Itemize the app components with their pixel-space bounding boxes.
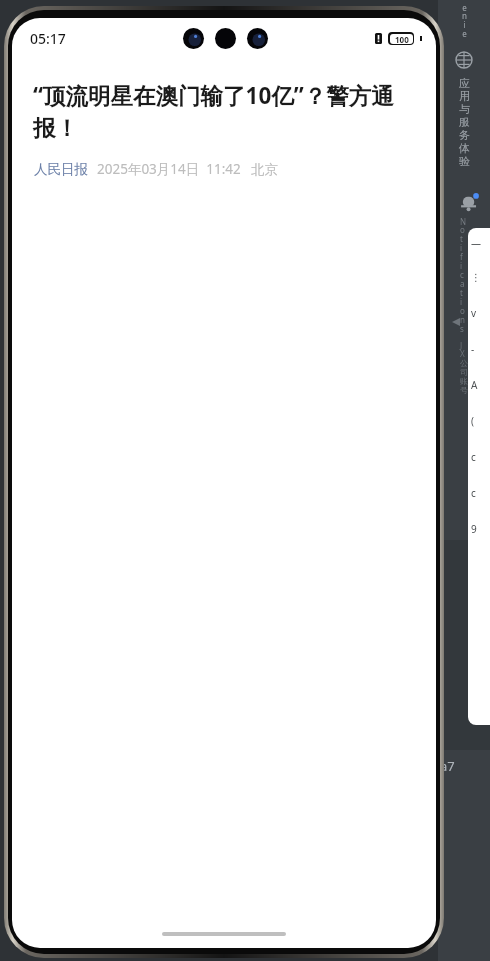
staticText: ( <box>471 414 474 428</box>
staticText: ⋮ <box>471 272 481 284</box>
staticText: “顶流明星在澳门输了10亿”？警方通报！ <box>33 80 415 143</box>
staticText: - <box>471 342 475 356</box>
staticText: a7 <box>440 757 455 775</box>
staticText: N o t i f i c a t i o n s <box>460 216 467 334</box>
button[interactable]: “顶流明星在澳门输了10亿”？警方通报！ <box>33 80 415 143</box>
staticText: — <box>471 236 481 250</box>
staticText: J X 公 司 账 号 <box>460 340 468 395</box>
staticText: 100 <box>395 34 409 44</box>
staticText: A <box>471 378 478 392</box>
staticText: c <box>471 450 476 464</box>
staticText: c <box>471 486 476 500</box>
staticText: e n i e <box>462 2 467 39</box>
button[interactable]: Apps and services <box>454 50 474 70</box>
staticText: 2025年03月14日 11:42 北京 <box>97 160 279 178</box>
staticText: 应 用 与 服 务 体 验 <box>459 76 470 168</box>
staticText: 9 <box>471 522 477 536</box>
staticText: 05:17 <box>30 29 66 48</box>
button[interactable]: 人民日报 <box>34 161 88 178</box>
button[interactable]: Notifications <box>458 192 480 214</box>
staticText: v <box>471 306 477 320</box>
